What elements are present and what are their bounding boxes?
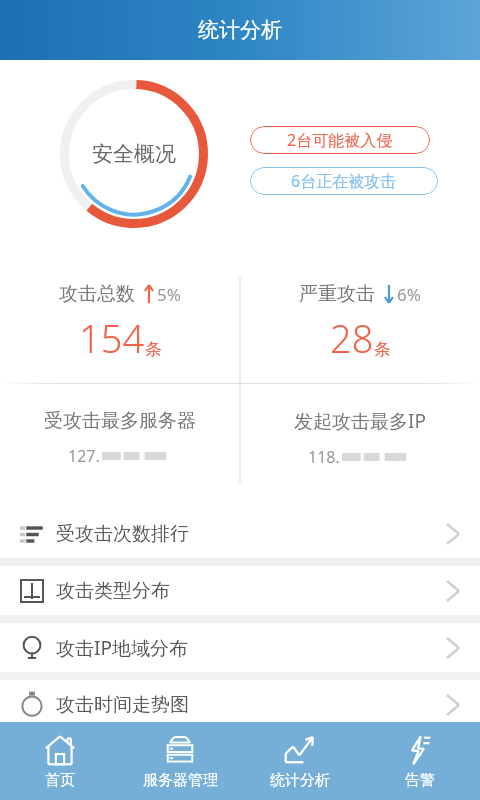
staticText: 严重攻击: [299, 282, 375, 306]
staticText: 28: [330, 312, 374, 364]
staticText: 受攻击次数排行: [56, 522, 189, 546]
staticText: 127.: [68, 445, 100, 467]
staticText: 条: [145, 339, 162, 360]
staticText: 服务器管理: [143, 771, 218, 790]
staticText: 2台可能被入侵: [287, 129, 393, 151]
staticText: 条: [374, 339, 391, 360]
button[interactable]: 发起攻击最多IP: [240, 380, 480, 495]
button[interactable]: 6台正在被攻击: [250, 167, 438, 195]
staticText: 统计分析: [198, 17, 282, 43]
button[interactable]: 攻击总数: [0, 265, 240, 380]
button[interactable]: 受攻击最多服务器: [0, 380, 240, 495]
button[interactable]: 受攻击次数排行: [0, 509, 480, 558]
staticText: 5%: [157, 283, 181, 306]
button[interactable]: 告警: [360, 722, 480, 800]
button[interactable]: 攻击IP地域分布: [0, 623, 480, 672]
button[interactable]: 严重攻击: [240, 265, 480, 380]
staticText: 攻击IP地域分布: [56, 635, 188, 661]
staticText: 6台正在被攻击: [291, 170, 397, 192]
button[interactable]: 首页: [0, 722, 120, 800]
staticText: 攻击时间走势图: [56, 693, 189, 717]
staticText: 发起攻击最多IP: [294, 408, 426, 434]
staticText: 告警: [405, 771, 435, 790]
staticText: 统计分析: [270, 771, 330, 790]
button[interactable]: 服务器管理: [120, 722, 240, 800]
staticText: 118.: [308, 446, 340, 468]
staticText: 受攻击最多服务器: [44, 409, 196, 433]
staticText: 首页: [45, 771, 75, 790]
staticText: 154: [79, 312, 145, 364]
button[interactable]: 攻击时间走势图: [0, 680, 480, 729]
staticText: 攻击总数: [59, 282, 135, 306]
button[interactable]: 2台可能被入侵: [250, 126, 430, 154]
staticText: 安全概况: [92, 141, 176, 167]
button[interactable]: 攻击类型分布: [0, 566, 480, 615]
staticText: 6%: [397, 283, 421, 306]
staticText: 攻击类型分布: [56, 579, 170, 603]
button[interactable]: 统计分析: [240, 722, 360, 800]
